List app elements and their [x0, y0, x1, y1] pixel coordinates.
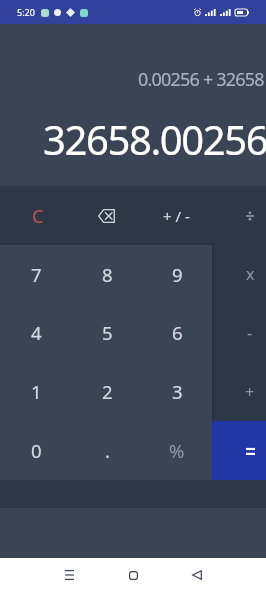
button[interactable]: 4: [1, 303, 72, 362]
button[interactable]: Recents: [37, 558, 101, 592]
button[interactable]: Back: [165, 558, 229, 592]
staticText: 0: [31, 438, 42, 463]
staticText: -: [247, 322, 253, 344]
button[interactable]: 3: [142, 362, 212, 421]
button[interactable]: 9: [142, 245, 212, 303]
button[interactable]: 8: [72, 245, 142, 303]
button[interactable]: Divide: [212, 186, 266, 245]
staticText: 1: [31, 379, 42, 404]
button[interactable]: 2: [72, 362, 142, 421]
button[interactable]: Clear: [3, 186, 73, 245]
staticText: 5: [102, 320, 113, 345]
staticText: 0.00256 + 32658: [138, 67, 264, 92]
button[interactable]: +: [212, 362, 266, 421]
button[interactable]: x: [212, 245, 266, 303]
button[interactable]: 7: [1, 245, 72, 303]
button[interactable]: -: [212, 303, 266, 362]
staticText: %: [169, 438, 185, 463]
button[interactable]: %: [142, 421, 212, 480]
button[interactable]: 0: [1, 421, 72, 480]
staticText: C: [32, 203, 44, 228]
staticText: 8: [102, 262, 113, 287]
button[interactable]: Home: [101, 558, 165, 592]
staticText: + / -: [163, 206, 190, 226]
button[interactable]: Plus minus sign: [141, 186, 211, 245]
staticText: 2: [102, 379, 113, 404]
button[interactable]: 1: [1, 362, 72, 421]
button[interactable]: 6: [142, 303, 212, 362]
button[interactable]: .: [72, 421, 142, 480]
button[interactable]: Backspace: [71, 186, 141, 245]
staticText: 9: [172, 262, 183, 287]
button[interactable]: Equals: [212, 421, 266, 480]
staticText: 32658.00256: [43, 112, 266, 166]
staticText: 4: [31, 320, 42, 345]
staticText: 3: [172, 379, 183, 404]
staticText: +: [245, 381, 255, 403]
button[interactable]: 5: [72, 303, 142, 362]
staticText: x: [246, 263, 255, 285]
staticText: 6: [172, 320, 183, 345]
staticText: .: [105, 438, 110, 463]
staticText: 7: [31, 262, 42, 287]
staticText: 5:20: [17, 6, 35, 18]
